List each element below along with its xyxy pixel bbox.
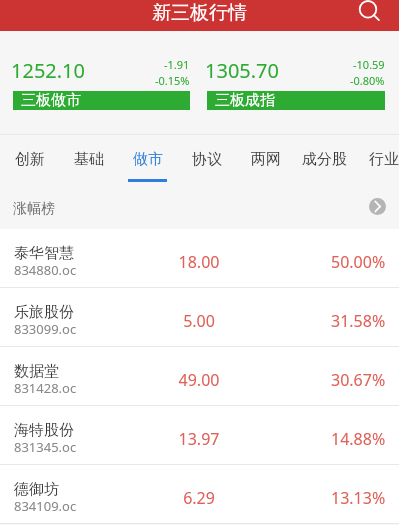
button[interactable]: 数据堂 — [0, 347, 399, 405]
button[interactable]: 两网 — [236, 134, 295, 184]
staticText: 海特股份 — [14, 421, 74, 440]
staticText: 泰华智慧 — [14, 244, 74, 263]
staticText: 831345.oc — [14, 438, 77, 456]
staticText: 833099.oc — [14, 320, 77, 338]
staticText: -1.91 — [164, 57, 190, 72]
staticText: 德御坊 — [14, 480, 59, 499]
staticText: 三板做市 — [21, 91, 81, 109]
button[interactable]: 海特股份 — [0, 406, 399, 464]
button[interactable]: 涨幅榜 — [0, 184, 399, 229]
staticText: 创新 — [15, 150, 45, 169]
staticText: 1252.10 — [11, 57, 85, 84]
button[interactable]: 1252.10 — [13, 31, 190, 134]
staticText: 乐旅股份 — [14, 303, 74, 322]
staticText: 三板成指 — [215, 91, 275, 109]
button[interactable]: 泰华智慧 — [0, 229, 399, 287]
staticText: 49.00 — [159, 369, 239, 391]
staticText: -10.59 — [353, 57, 385, 72]
staticText: 涨幅榜 — [13, 200, 55, 218]
button[interactable]: 协议 — [177, 134, 236, 184]
staticText: 数据堂 — [14, 362, 59, 381]
staticText: 14.88% — [331, 428, 386, 450]
button[interactable]: Search — [356, 0, 387, 31]
staticText: 协议 — [192, 150, 222, 169]
staticText: -0.80% — [350, 73, 385, 88]
button[interactable]: 成分股 — [295, 134, 354, 184]
button[interactable]: 1305.70 — [207, 31, 385, 134]
button[interactable]: 做市 — [118, 134, 177, 184]
staticText: 30.67% — [331, 369, 386, 391]
staticText: 834109.oc — [14, 497, 77, 515]
button[interactable]: 创新 — [0, 134, 59, 184]
button[interactable]: 德御坊 — [0, 465, 399, 523]
staticText: 31.58% — [331, 310, 386, 332]
staticText: 基础 — [74, 150, 104, 169]
staticText: -0.15% — [155, 73, 190, 88]
button[interactable]: 基础 — [59, 134, 118, 184]
button[interactable]: 行业 — [354, 134, 399, 184]
staticText: 做市 — [133, 150, 163, 169]
staticText: 50.00% — [331, 251, 386, 273]
staticText: 成分股 — [302, 150, 347, 169]
staticText: 行业 — [369, 150, 399, 169]
button[interactable]: 乐旅股份 — [0, 288, 399, 346]
staticText: 18.00 — [159, 251, 239, 273]
staticText: 834880.oc — [14, 261, 77, 279]
staticText: 6.29 — [159, 487, 239, 509]
staticText: 1305.70 — [205, 57, 279, 84]
staticText: 新三板行情 — [152, 1, 247, 25]
staticText: 13.13% — [331, 487, 386, 509]
staticText: 13.97 — [159, 428, 239, 450]
staticText: 831428.oc — [14, 379, 77, 397]
staticText: 5.00 — [159, 310, 239, 332]
staticText: 两网 — [251, 150, 281, 169]
